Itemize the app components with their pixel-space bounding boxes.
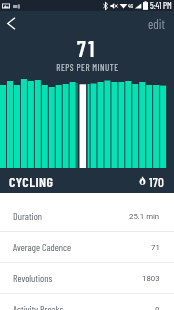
staticText: 0 — [155, 305, 160, 310]
staticText: 71 — [151, 243, 160, 252]
staticText: Activity Breaks — [13, 303, 64, 310]
staticText: REPS PER MINUTE — [56, 62, 119, 73]
staticText: 4G — [128, 2, 134, 9]
staticText: Duration — [13, 210, 43, 222]
staticText: Average Cadence — [13, 241, 72, 253]
button[interactable]: Duration — [0, 201, 174, 232]
staticText: edit — [148, 16, 165, 31]
staticText: 25.1 min — [129, 212, 160, 221]
staticText: 170 — [149, 174, 165, 190]
button[interactable]: Revolutions — [0, 263, 174, 294]
button[interactable]: Activity Breaks — [0, 294, 174, 310]
button[interactable]: Back — [0, 11, 22, 36]
staticText: CYCLING — [9, 173, 54, 190]
staticText: 1803 — [142, 274, 160, 283]
staticText: 71 — [77, 35, 97, 61]
button[interactable]: Average Cadence — [0, 232, 174, 263]
staticText: Revolutions — [13, 272, 53, 284]
staticText: 5:41 PM — [150, 0, 172, 11]
button[interactable]: edit — [138, 11, 174, 36]
